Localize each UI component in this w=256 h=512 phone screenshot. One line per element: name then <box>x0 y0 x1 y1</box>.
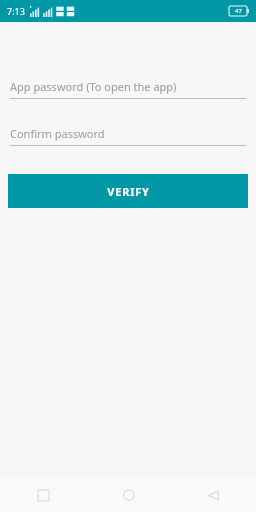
staticText: Confirm password <box>10 126 105 141</box>
staticText: VERIFY <box>107 184 150 199</box>
button[interactable]: Confirm password <box>10 123 246 146</box>
button[interactable]: Recent apps <box>0 478 86 512</box>
staticText: 47 <box>235 7 242 15</box>
button[interactable]: VERIFY <box>8 174 248 208</box>
button[interactable]: App password (To open the app) <box>10 76 246 99</box>
staticText: 7:13 <box>7 5 25 17</box>
staticText: App password (To open the app) <box>10 79 177 94</box>
